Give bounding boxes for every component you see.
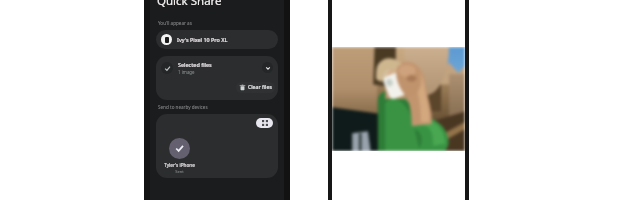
button[interactable]: Selected files (156, 56, 278, 79)
button[interactable]: Tyler's iPhone (160, 138, 198, 175)
button[interactable]: Expand selected files (262, 62, 273, 73)
staticText: Tyler's iPhone (164, 162, 195, 168)
button[interactable]: Ivy's Pixel 10 Pro XL (156, 30, 278, 49)
staticText: Selected files (178, 61, 212, 68)
staticText: Ivy's Pixel 10 Pro XL (177, 36, 228, 43)
button[interactable]: Scan QR code (256, 118, 273, 128)
staticText: Clear files (248, 84, 272, 91)
staticText: 1 image (178, 69, 195, 75)
staticText: Quick Share (157, 0, 222, 9)
staticText: Sent (175, 169, 184, 175)
button[interactable]: Clear files (236, 82, 275, 93)
staticText: You'll appear as (158, 20, 192, 26)
staticText: Send to nearby devices (158, 104, 208, 110)
